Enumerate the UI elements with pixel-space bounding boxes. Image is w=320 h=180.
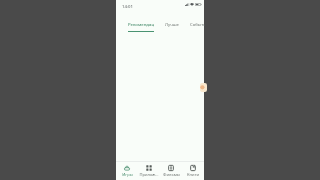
button[interactable] xyxy=(200,83,207,92)
staticText: События xyxy=(190,21,205,27)
button[interactable]: Books xyxy=(182,162,204,180)
button[interactable]: Apps xyxy=(138,162,160,180)
staticText: Игры xyxy=(122,172,133,178)
button[interactable]: Movies xyxy=(160,162,182,180)
staticText: Фильмы xyxy=(163,172,180,178)
button[interactable]: Лучшее xyxy=(165,21,179,27)
button[interactable]: Games xyxy=(116,162,138,180)
staticText: Приложения xyxy=(139,172,159,178)
staticText: 14:01 xyxy=(122,3,133,9)
button[interactable]: События xyxy=(190,21,205,27)
staticText: Рекомендации xyxy=(128,21,154,27)
staticText: Книги xyxy=(187,172,199,178)
staticText: Лучшее xyxy=(165,21,179,27)
button[interactable]: Рекомендации xyxy=(128,21,154,32)
